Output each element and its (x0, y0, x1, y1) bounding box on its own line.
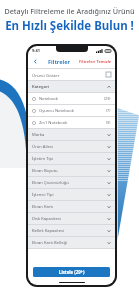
button[interactable]: Bellek Kapasitesi (28, 225, 115, 236)
staticText: Marka (32, 132, 45, 138)
staticText: En Hızlı Şekilde Bulun ! (5, 18, 134, 34)
staticText: Notebook (39, 96, 59, 102)
staticText: (29) (104, 96, 111, 101)
button[interactable]: Ürün Ailesi (28, 141, 115, 152)
button[interactable]: Oyuncu Notebook (28, 105, 115, 116)
button[interactable]: Marka (28, 129, 115, 140)
button[interactable]: Kategori (28, 81, 115, 92)
staticText: Disk Kapasitesi (32, 216, 61, 222)
staticText: Filtreler (48, 58, 71, 66)
staticText: Detaylı Filtreleme ile Aradığınız Ürünü (4, 6, 135, 16)
staticText: Kategori (32, 84, 50, 90)
staticText: Filtreleri Temizle (79, 59, 112, 64)
button[interactable]: Back (31, 57, 40, 66)
staticText: İşletim Tipi (32, 156, 54, 162)
button[interactable]: Ürünü Göster (28, 69, 115, 80)
staticText: (9) (106, 120, 111, 125)
button[interactable]: Ekran Kartı Belleği (28, 237, 115, 248)
button[interactable]: Ekran Boyutu (28, 165, 115, 176)
staticText: Ekran Kartı Belleği (32, 240, 68, 246)
staticText: 9:41 (32, 48, 40, 53)
button[interactable]: İşletim Tipi (28, 153, 115, 164)
staticText: Oyuncu Notebook (39, 108, 74, 114)
staticText: Ekran Boyutu (32, 168, 58, 174)
staticText: Ürün Ailesi (32, 144, 53, 150)
staticText: İşlemci Tipi (32, 192, 54, 198)
button[interactable]: Filtreleri Temizle (79, 59, 112, 64)
button[interactable]: Ekran Kartı (28, 201, 115, 212)
staticText: Ürünü Göster (32, 72, 60, 78)
button[interactable]: Disk Kapasitesi (28, 213, 115, 224)
staticText: Ekran Kartı (32, 204, 54, 210)
staticText: Listele (29+) (59, 269, 85, 275)
staticText: Ekran Çözünürlüğü (32, 180, 69, 186)
button[interactable]: Notebook (28, 93, 115, 104)
button[interactable]: Listele (29+) (33, 267, 110, 277)
button[interactable]: İşlemci Tipi (28, 189, 115, 200)
staticText: 2in1 Notebook (39, 120, 68, 126)
staticText: (7) (106, 108, 111, 113)
button[interactable]: 2in1 Notebook (28, 117, 115, 128)
button[interactable]: Ekran Çözünürlüğü (28, 177, 115, 188)
staticText: Bellek Kapasitesi (32, 228, 65, 234)
